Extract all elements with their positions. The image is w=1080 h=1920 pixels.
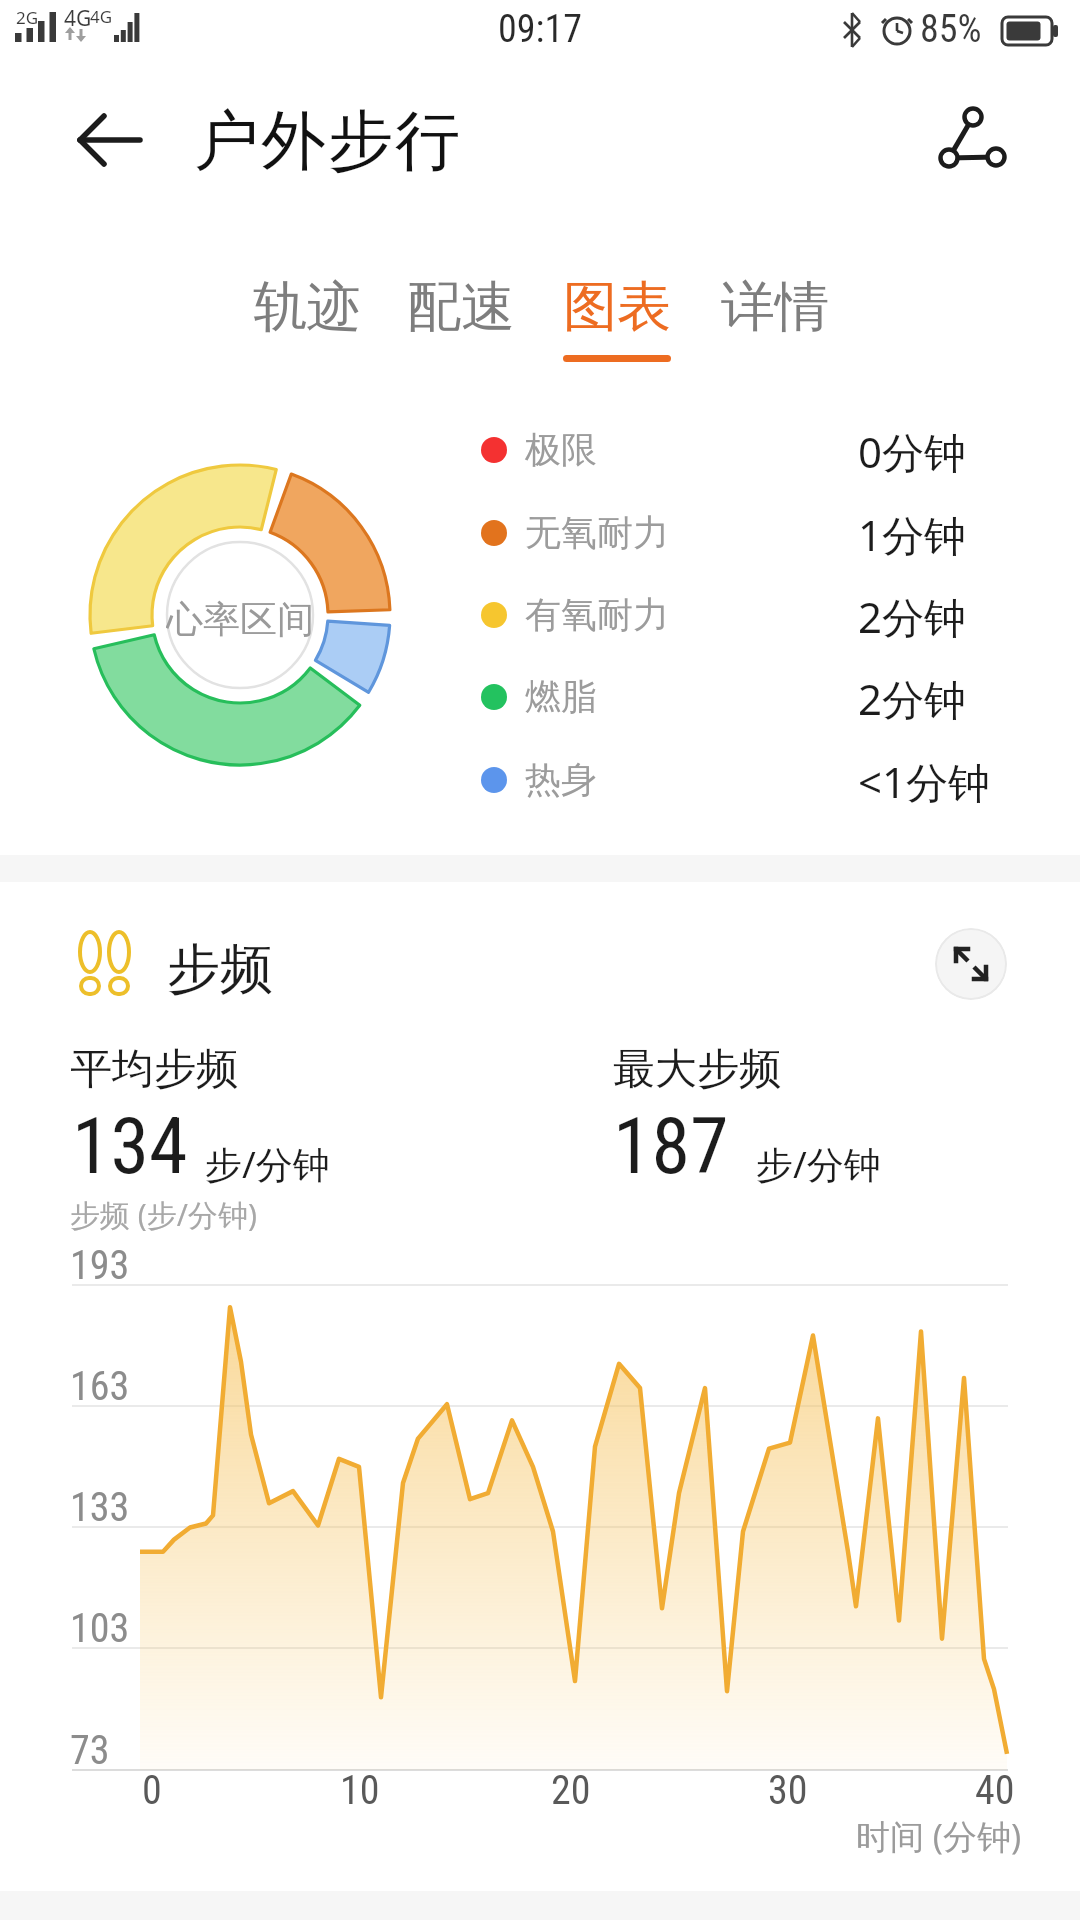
staticText: 40 bbox=[975, 1767, 1015, 1814]
staticText: 1分钟 bbox=[858, 506, 967, 563]
staticText: 热身 bbox=[525, 757, 597, 802]
staticText: 133 bbox=[70, 1484, 130, 1531]
staticText: 心率区间 bbox=[166, 596, 314, 640]
staticText: 详情 bbox=[721, 273, 829, 341]
staticText: 时间 (分钟) bbox=[856, 1813, 1022, 1859]
staticText: 193 bbox=[70, 1242, 130, 1289]
staticText: 0分钟 bbox=[858, 423, 967, 480]
staticText: 103 bbox=[70, 1605, 130, 1652]
button[interactable]: 轨迹 bbox=[231, 255, 383, 359]
staticText: 30 bbox=[768, 1767, 808, 1814]
staticText: 步频 bbox=[167, 936, 273, 1003]
staticText: 2分钟 bbox=[858, 588, 967, 645]
staticText: 图表 bbox=[563, 273, 671, 341]
staticText: 0 bbox=[142, 1767, 162, 1814]
button[interactable] bbox=[56, 96, 166, 186]
staticText: 09:17 bbox=[498, 7, 582, 52]
staticText: 平均步频 bbox=[70, 1043, 238, 1096]
staticText: 10 bbox=[340, 1767, 380, 1814]
staticText: 85% bbox=[920, 7, 982, 52]
staticText: 134 bbox=[72, 1101, 188, 1192]
button[interactable] bbox=[935, 928, 1007, 1000]
staticText: 2G bbox=[16, 6, 39, 29]
staticText: 187 bbox=[613, 1101, 729, 1192]
button[interactable] bbox=[915, 85, 1035, 195]
staticText: 步/分钟 bbox=[756, 1138, 881, 1189]
staticText: 配速 bbox=[407, 273, 515, 341]
staticText: 73 bbox=[70, 1727, 110, 1774]
button[interactable]: 详情 bbox=[699, 255, 851, 359]
staticText: 4G bbox=[90, 5, 113, 28]
staticText: 20 bbox=[551, 1767, 591, 1814]
staticText: 步频 (步/分钟) bbox=[70, 1194, 257, 1235]
staticText: 轨迹 bbox=[253, 273, 361, 341]
staticText: 最大步频 bbox=[613, 1043, 781, 1096]
staticText: 163 bbox=[70, 1363, 130, 1410]
staticText: <1分钟 bbox=[858, 753, 991, 810]
staticText: 极限 bbox=[525, 427, 597, 472]
staticText: 无氧耐力 bbox=[525, 510, 669, 555]
staticText: 步/分钟 bbox=[205, 1138, 330, 1189]
button[interactable]: 图表 bbox=[541, 255, 693, 359]
staticText: 燃脂 bbox=[525, 674, 597, 719]
button[interactable]: 配速 bbox=[385, 255, 537, 359]
staticText: 户外步行 bbox=[193, 100, 461, 182]
staticText: 4G bbox=[64, 4, 92, 33]
staticText: 2分钟 bbox=[858, 670, 967, 727]
staticText: 有氧耐力 bbox=[525, 592, 669, 637]
